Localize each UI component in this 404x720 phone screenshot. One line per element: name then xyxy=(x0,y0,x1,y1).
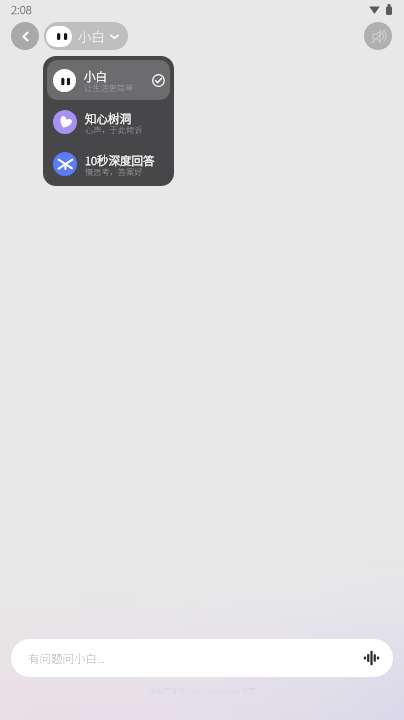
staticText: 小白 xyxy=(78,26,105,46)
button[interactable]: 10秒深度回答 xyxy=(47,144,170,184)
button[interactable]: 小白 xyxy=(44,22,128,50)
staticText: 知心树洞 xyxy=(85,110,131,127)
staticText: 小白 xyxy=(84,68,107,85)
staticText: 心声，于此倾诉 xyxy=(85,123,143,135)
button[interactable]: Back xyxy=(11,22,39,50)
staticText: 10秒深度回答 xyxy=(85,152,155,169)
button[interactable]: 有问题问小白... xyxy=(11,639,393,677)
staticText: 让生活更简单 xyxy=(84,81,134,93)
button[interactable]: 小白 xyxy=(47,60,170,100)
button[interactable]: Mute xyxy=(364,22,392,50)
staticText: 慢思考，答案好 xyxy=(85,165,143,177)
button[interactable]: 知心树洞 xyxy=(47,102,170,142)
staticText: 有问题问小白... xyxy=(28,650,105,667)
staticText: 电脑可登录 wen.xiaobai.com 使用 xyxy=(0,686,404,696)
staticText: 2:08 xyxy=(11,1,32,18)
